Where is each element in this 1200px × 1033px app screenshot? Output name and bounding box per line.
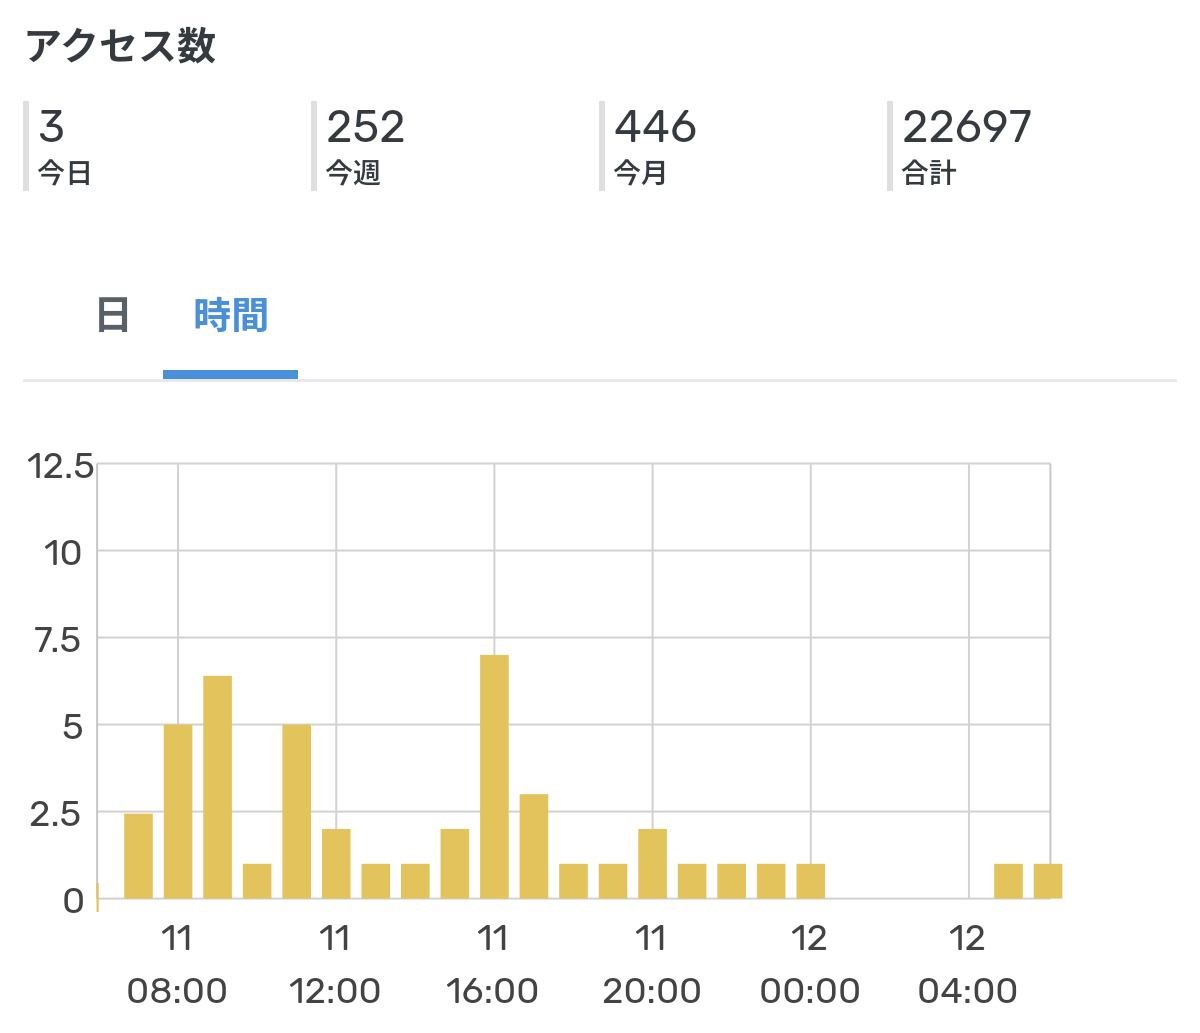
staticText: 10 (44, 531, 83, 574)
staticText: 今日 (37, 151, 94, 192)
staticText: 合計 (901, 151, 958, 192)
staticText: 446 (614, 100, 698, 153)
staticText: 12 (949, 916, 987, 958)
staticText: 22697 (902, 100, 1032, 153)
staticText: 20:00 (602, 969, 703, 1011)
staticText: 日 (93, 283, 133, 341)
button[interactable]: 日 (63, 261, 163, 363)
staticText: 11 (477, 916, 509, 958)
button[interactable]: 446 (599, 101, 871, 191)
button[interactable]: 22697 (887, 101, 1159, 191)
staticText: 7.5 (34, 618, 82, 661)
staticText: 2.5 (29, 792, 82, 835)
staticText: 00:00 (759, 969, 862, 1011)
staticText: 08:00 (126, 969, 229, 1011)
other: Hourly access bar chart (0, 0, 1200, 1033)
staticText: 252 (326, 100, 406, 153)
staticText: 今月 (613, 151, 670, 192)
staticText: 12 (791, 916, 829, 958)
staticText: 11 (161, 916, 193, 958)
staticText: アクセス数 (23, 15, 217, 71)
staticText: 5 (62, 705, 84, 748)
staticText: 11 (319, 916, 351, 958)
staticText: 12.5 (27, 444, 95, 487)
button[interactable]: 252 (311, 101, 583, 191)
button[interactable]: 時間 (163, 261, 299, 363)
staticText: 今週 (325, 151, 382, 192)
staticText: 0 (62, 879, 86, 922)
button[interactable]: 3 (23, 101, 295, 191)
staticText: 時間 (193, 285, 270, 340)
staticText: 12:00 (289, 969, 382, 1011)
staticText: 16:00 (446, 969, 540, 1011)
staticText: 3 (38, 100, 66, 153)
staticText: 04:00 (917, 969, 1019, 1011)
staticText: 11 (635, 916, 667, 958)
